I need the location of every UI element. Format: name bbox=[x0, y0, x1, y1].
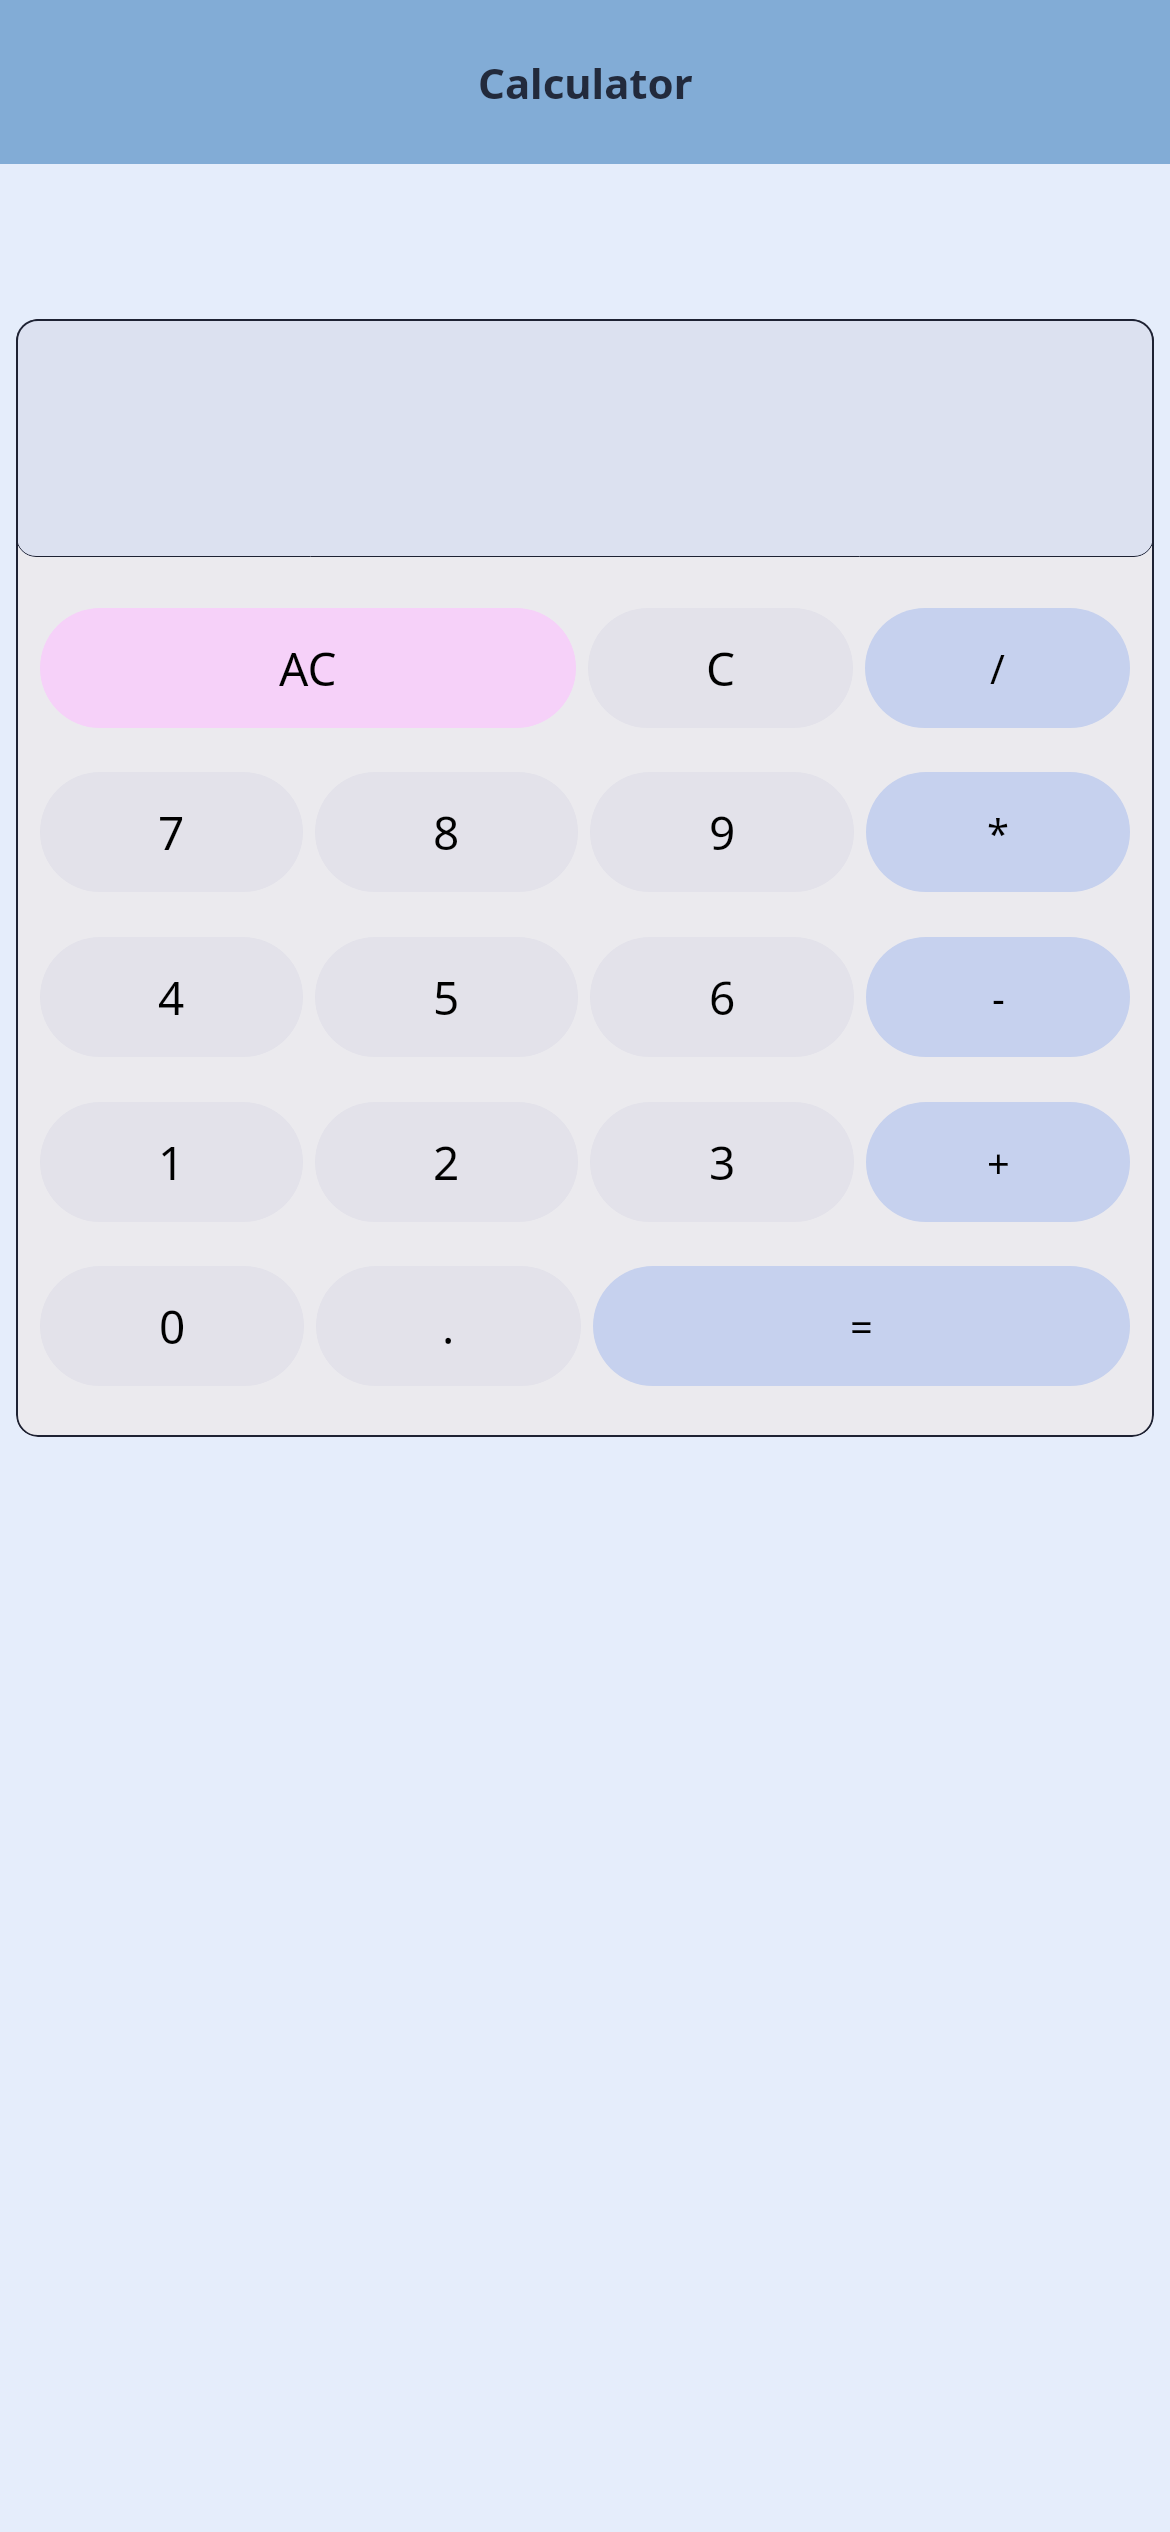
button[interactable]: + bbox=[866, 1102, 1130, 1222]
staticText: 6 bbox=[709, 966, 736, 1029]
button[interactable]: 1 bbox=[40, 1102, 303, 1222]
button[interactable]: 6 bbox=[590, 937, 854, 1057]
staticText: 9 bbox=[709, 801, 736, 864]
button[interactable]: 7 bbox=[40, 772, 303, 892]
staticText: 8 bbox=[433, 801, 460, 864]
button[interactable]: 4 bbox=[40, 937, 303, 1057]
button[interactable]: 2 bbox=[315, 1102, 578, 1222]
staticText: AC bbox=[279, 637, 337, 700]
staticText: 0 bbox=[159, 1295, 186, 1358]
staticText: C bbox=[706, 637, 736, 700]
staticText: + bbox=[987, 1135, 1010, 1189]
button[interactable] bbox=[16, 319, 1154, 557]
button[interactable]: 0 bbox=[40, 1266, 304, 1386]
button[interactable]: 8 bbox=[315, 772, 578, 892]
button[interactable]: * bbox=[866, 772, 1130, 892]
button[interactable]: = bbox=[593, 1266, 1130, 1386]
staticText: 3 bbox=[709, 1131, 736, 1194]
button[interactable]: - bbox=[866, 937, 1130, 1057]
staticText: 5 bbox=[433, 966, 460, 1029]
button[interactable]: C bbox=[588, 608, 853, 728]
staticText: / bbox=[990, 641, 1005, 695]
button[interactable]: AC bbox=[40, 608, 576, 728]
staticText: . bbox=[442, 1295, 455, 1358]
staticText: 2 bbox=[433, 1131, 460, 1194]
button[interactable]: . bbox=[316, 1266, 581, 1386]
button[interactable]: 3 bbox=[590, 1102, 854, 1222]
button[interactable]: / bbox=[865, 608, 1130, 728]
staticText: = bbox=[850, 1299, 873, 1353]
staticText: Calculator bbox=[478, 54, 693, 111]
button[interactable]: 9 bbox=[590, 772, 854, 892]
staticText: * bbox=[987, 805, 1010, 859]
staticText: 4 bbox=[158, 966, 185, 1029]
button[interactable]: 5 bbox=[315, 937, 578, 1057]
staticText: 7 bbox=[158, 801, 185, 864]
staticText: 1 bbox=[158, 1131, 185, 1194]
staticText: - bbox=[992, 970, 1005, 1024]
